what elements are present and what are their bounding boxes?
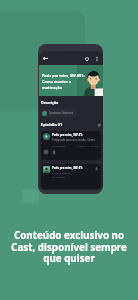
staticText: 15 min • 32 MB — [78, 144, 99, 147]
staticText: Sucesso Interno — [49, 111, 74, 115]
staticText: há 3 meses — [52, 144, 66, 147]
staticText: Descrição — [41, 100, 59, 105]
button[interactable]: Sort — [97, 123, 101, 127]
staticText: Pods pra mim, SW #01: Como manter a moti… — [42, 73, 85, 90]
button[interactable]: Sucesso Interno — [41, 109, 77, 117]
staticText: Conteúdo exclusivo no Cast, disponível s… — [0, 229, 138, 265]
button[interactable]: Download — [51, 149, 56, 154]
staticText: Pods pra mim, SW #1: 15/05/2021 - — [52, 166, 93, 170]
staticText: Episódio 01 — [41, 122, 63, 127]
button[interactable]: Download — [94, 166, 99, 171]
button[interactable]: Favorite — [83, 55, 90, 62]
staticText: há 3 meses — [52, 175, 66, 178]
button[interactable]: Add to queue — [43, 149, 48, 154]
button[interactable]: Back — [42, 55, 49, 62]
button[interactable]: More options — [93, 55, 100, 62]
staticText: Pods pra mim, SW #1: 15/05/2021 - — [52, 133, 99, 137]
button[interactable]: Pods pra mim, SW #1: 15/05/2021 - — [41, 164, 101, 189]
staticText: sucesso interno — [52, 171, 71, 174]
staticText: Preparado para sua sessão. Como manter a — [52, 138, 99, 142]
button[interactable]: Pods pra mim, SW #1: 15/05/2021 - — [41, 131, 101, 160]
